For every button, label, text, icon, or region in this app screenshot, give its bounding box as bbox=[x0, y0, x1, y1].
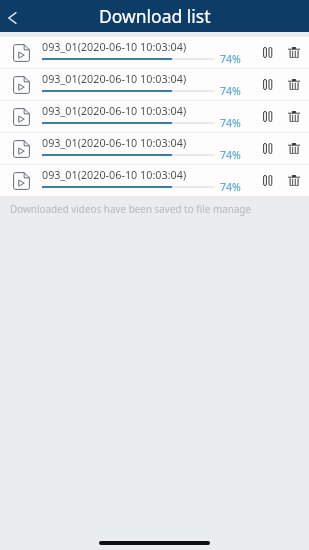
staticText: 093_01(2020-06-10 10:03:04) bbox=[42, 167, 187, 182]
staticText: 093_01(2020-06-10 10:03:04) bbox=[42, 103, 187, 118]
button[interactable]: Delete bbox=[282, 136, 306, 160]
button[interactable]: Pause bbox=[256, 40, 280, 64]
button[interactable]: Pause bbox=[256, 72, 280, 96]
button[interactable]: Delete bbox=[282, 40, 306, 64]
staticText: 74% bbox=[220, 116, 241, 130]
button[interactable]: Delete bbox=[282, 168, 306, 192]
staticText: 74% bbox=[220, 148, 241, 162]
staticText: 093_01(2020-06-10 10:03:04) bbox=[42, 39, 187, 54]
button[interactable]: Pause bbox=[256, 168, 280, 192]
staticText: 74% bbox=[220, 180, 241, 194]
button[interactable]: Back bbox=[0, 0, 32, 32]
button[interactable]: Delete bbox=[282, 72, 306, 96]
button[interactable]: 093_01(2020-06-10 10:03:04) bbox=[0, 165, 309, 196]
staticText: 74% bbox=[220, 52, 241, 66]
button[interactable]: 093_01(2020-06-10 10:03:04) bbox=[0, 101, 309, 132]
staticText: Download list bbox=[99, 4, 211, 28]
button[interactable]: Delete bbox=[282, 104, 306, 128]
button[interactable]: 093_01(2020-06-10 10:03:04) bbox=[0, 133, 309, 164]
button[interactable]: 093_01(2020-06-10 10:03:04) bbox=[0, 69, 309, 100]
staticText: Downloaded videos have been saved to fil… bbox=[10, 202, 252, 215]
staticText: 093_01(2020-06-10 10:03:04) bbox=[42, 71, 187, 86]
staticText: 093_01(2020-06-10 10:03:04) bbox=[42, 135, 187, 150]
button[interactable]: Pause bbox=[256, 136, 280, 160]
staticText: 74% bbox=[220, 84, 241, 98]
button[interactable]: Pause bbox=[256, 104, 280, 128]
button[interactable]: 093_01(2020-06-10 10:03:04) bbox=[0, 37, 309, 68]
